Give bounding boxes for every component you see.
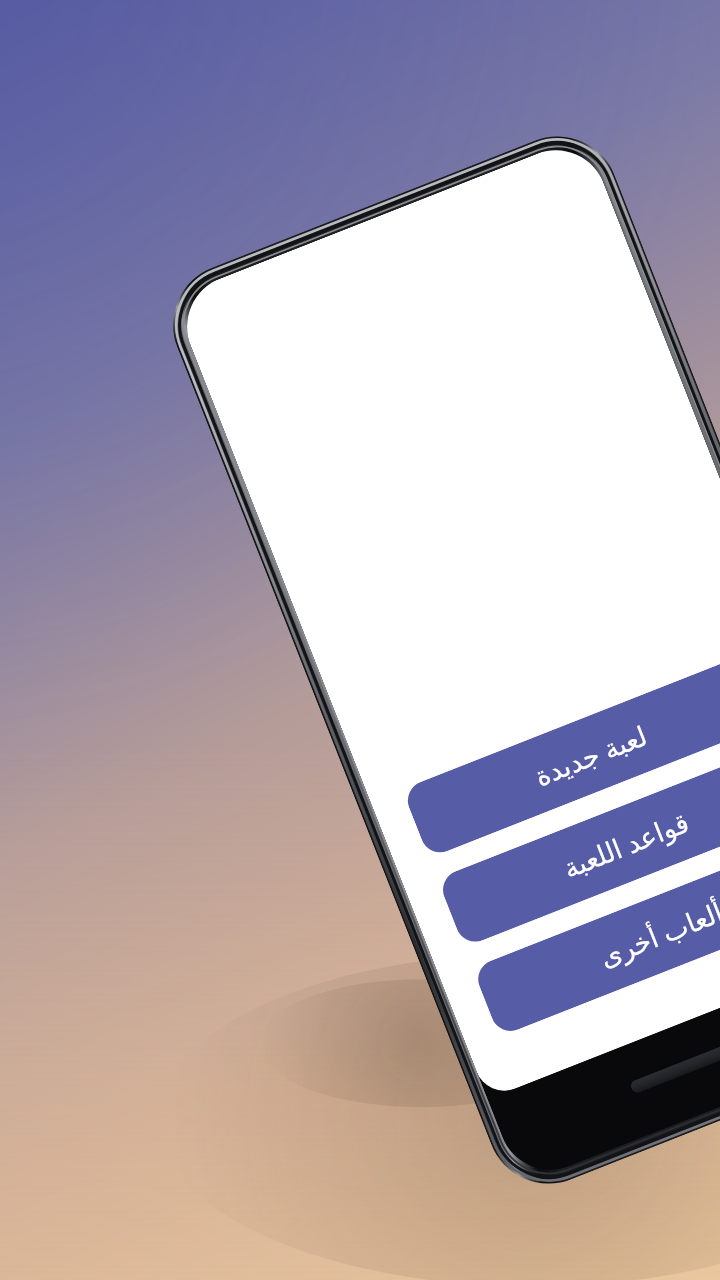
staticText: ألعاب أخرى (594, 893, 720, 975)
staticText: قواعد اللعبة (558, 803, 694, 886)
staticText: لعبة جديدة (529, 716, 652, 794)
button[interactable]: ألعاب أخرى (472, 830, 720, 1037)
button[interactable]: قواعد اللعبة (437, 741, 720, 948)
button[interactable]: لعبة جديدة (402, 652, 720, 858)
